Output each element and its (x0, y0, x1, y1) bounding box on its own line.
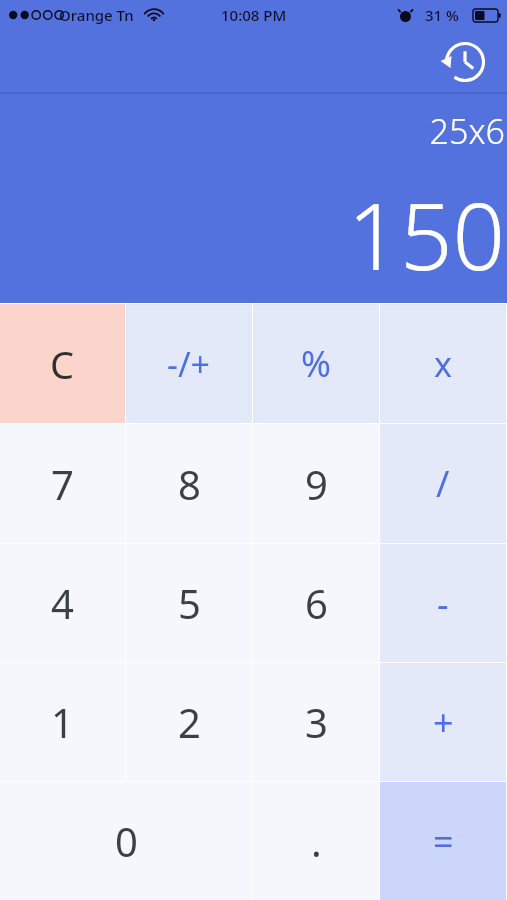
button[interactable]: 3 (253, 663, 379, 781)
staticText: + (433, 698, 454, 747)
staticText: - (437, 579, 449, 628)
staticText: 6 (305, 576, 328, 630)
button[interactable]: 5 (126, 544, 252, 662)
button[interactable]: - (380, 544, 506, 662)
staticText: 1 (51, 695, 74, 749)
staticText: C (50, 338, 75, 390)
staticText: 9 (305, 457, 328, 511)
staticText: 3 (305, 695, 328, 749)
staticText: 25x6 (429, 108, 505, 154)
button[interactable]: / (380, 424, 506, 543)
button[interactable]: C (0, 304, 125, 423)
button[interactable]: 2 (126, 663, 252, 781)
staticText: 2 (178, 695, 201, 749)
staticText: 7 (51, 457, 74, 511)
button[interactable]: = (380, 782, 506, 900)
staticText: 10:08 PM (221, 5, 287, 25)
button[interactable]: + (380, 663, 506, 781)
staticText: x (434, 341, 452, 387)
staticText: 31 % (425, 5, 459, 25)
staticText: Orange Tn (59, 5, 134, 25)
staticText: 150 (347, 172, 505, 297)
button[interactable]: x (380, 304, 506, 423)
button[interactable]: 1 (0, 663, 125, 781)
button[interactable]: 4 (0, 544, 125, 662)
staticText: . (311, 814, 322, 868)
button[interactable]: 7 (0, 424, 125, 543)
button[interactable]: 9 (253, 424, 379, 543)
button[interactable]: % (253, 304, 379, 423)
staticText: -/+ (167, 341, 211, 387)
staticText: 4 (51, 576, 74, 630)
button[interactable]: -/+ (126, 304, 252, 423)
button[interactable]: 8 (126, 424, 252, 543)
button[interactable]: 6 (253, 544, 379, 662)
staticText: 8 (178, 457, 201, 511)
button[interactable]: History (440, 37, 490, 87)
button[interactable]: 0 (0, 782, 252, 900)
button[interactable]: . (253, 782, 379, 900)
staticText: 5 (178, 576, 201, 630)
staticText: / (436, 459, 450, 508)
staticText: % (301, 339, 331, 388)
staticText: 0 (115, 814, 138, 868)
staticText: = (433, 817, 454, 866)
